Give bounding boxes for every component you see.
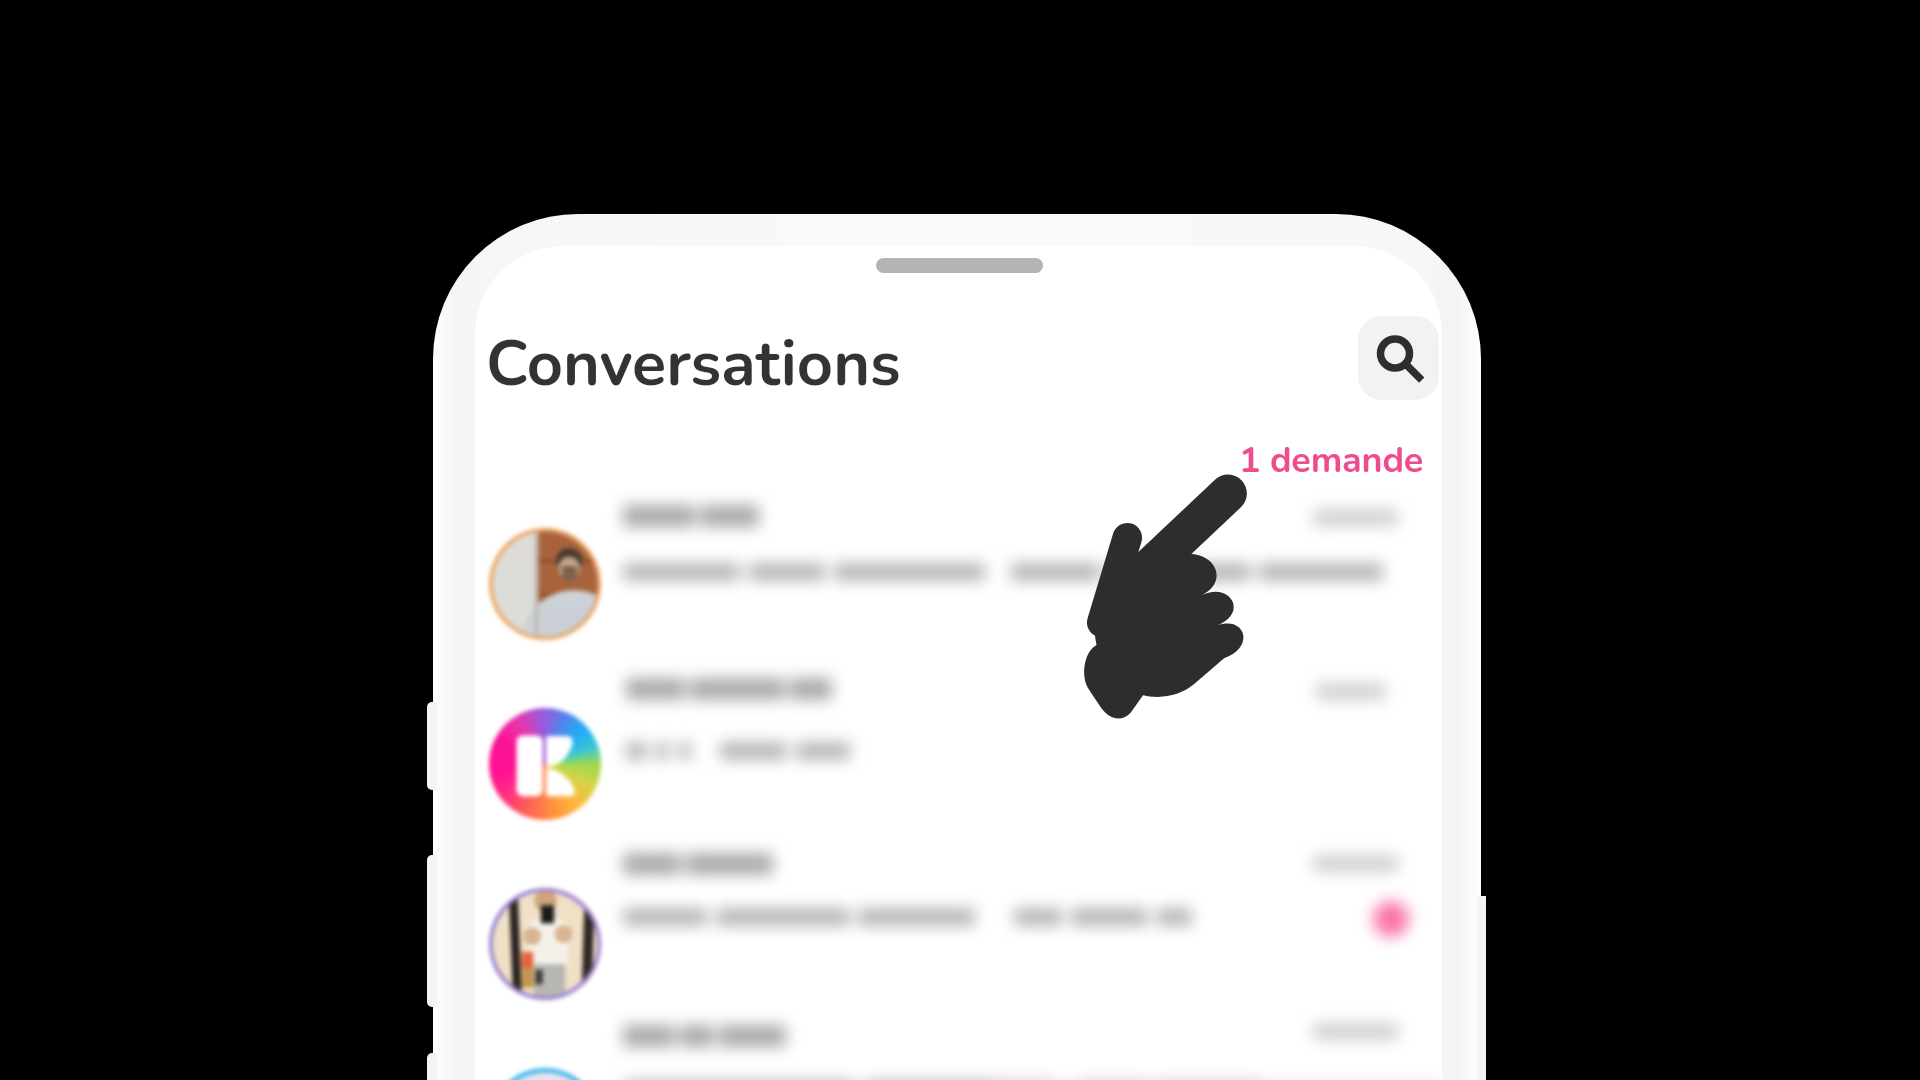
button[interactable]: Open conversation [475,808,1442,980]
staticText: Conversations [486,321,901,407]
button[interactable]: Open conversation [475,633,1442,805]
button[interactable]: 1 demande [1239,436,1424,485]
other: Tap pointer [1078,475,1254,721]
button[interactable]: Search [1358,316,1439,400]
button[interactable]: Open conversation [475,980,1442,1080]
button[interactable]: Open conversation [475,460,1442,632]
